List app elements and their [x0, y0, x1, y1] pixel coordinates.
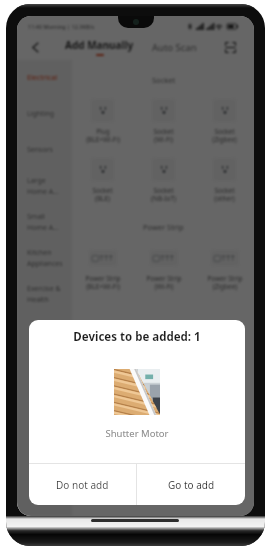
button[interactable]: Power Strip (Zigbee) [194, 250, 254, 291]
button[interactable]: Add Manually [57, 34, 142, 60]
staticText: Socket (BLE) [92, 186, 113, 203]
staticText: Socket (NB-IoT) [151, 186, 176, 203]
staticText: Socket (Zigbee) [212, 127, 237, 144]
staticText: Power Strip [143, 222, 184, 232]
staticText: Shutter Motor [29, 427, 245, 440]
button[interactable]: Do not add [29, 464, 136, 505]
staticText: Devices to be added: 1 [29, 329, 245, 345]
staticText: Small Home A... [27, 212, 59, 232]
staticText: Electrical [27, 73, 58, 83]
button[interactable]: Sensors [17, 132, 72, 168]
staticText: Power Strip (Zigbee) [207, 274, 243, 291]
button[interactable]: Exercise & Health [17, 276, 72, 312]
button[interactable]: Large Home A... [17, 168, 72, 204]
staticText: Large Home A... [27, 176, 59, 196]
button[interactable]: Back [25, 37, 45, 57]
button[interactable]: Socket (BLE) [72, 158, 133, 203]
staticText: 11:40 Morning | 12.3KB/s [28, 23, 95, 30]
button[interactable]: Power Strip (BLE+Wi-Fi) [72, 250, 133, 291]
button[interactable]: Socket (NB-IoT) [133, 158, 194, 203]
staticText: Power Strip (Wi-Fi) [146, 274, 182, 291]
button[interactable]: Small Home A... [17, 204, 72, 240]
staticText: Exercise & Health [27, 284, 61, 304]
staticText: Socket (Wi-Fi) [153, 127, 174, 144]
staticText: Auto Scan [152, 41, 197, 54]
button[interactable]: Lighting [17, 96, 72, 132]
button[interactable]: Socket (Wi-Fi) [133, 99, 194, 144]
staticText: Power Strip (BLE+Wi-Fi) [85, 274, 121, 291]
button[interactable]: Plug (BLE+Wi-Fi) [72, 99, 133, 144]
button[interactable]: Auto Scan [142, 34, 207, 60]
button[interactable]: Electrical [17, 60, 72, 96]
staticText: Plug (BLE+Wi-Fi) [86, 127, 120, 144]
staticText: Socket [152, 75, 176, 85]
button[interactable]: Socket (other) [194, 158, 254, 203]
button[interactable]: Power Strip (Wi-Fi) [133, 250, 194, 291]
staticText: Go to add [168, 478, 215, 492]
button[interactable]: Kitchen Appliances [17, 240, 72, 276]
staticText: Lighting [27, 109, 55, 119]
staticText: Sensors [27, 145, 53, 155]
button[interactable]: Scan QR code [220, 37, 240, 57]
staticText: Do not add [56, 478, 109, 492]
button[interactable]: Go to add [137, 464, 245, 505]
staticText: Socket (other) [214, 186, 235, 203]
staticText: Add Manually [65, 38, 134, 52]
button[interactable]: Socket (Zigbee) [194, 99, 254, 144]
staticText: Kitchen Appliances [27, 248, 63, 268]
